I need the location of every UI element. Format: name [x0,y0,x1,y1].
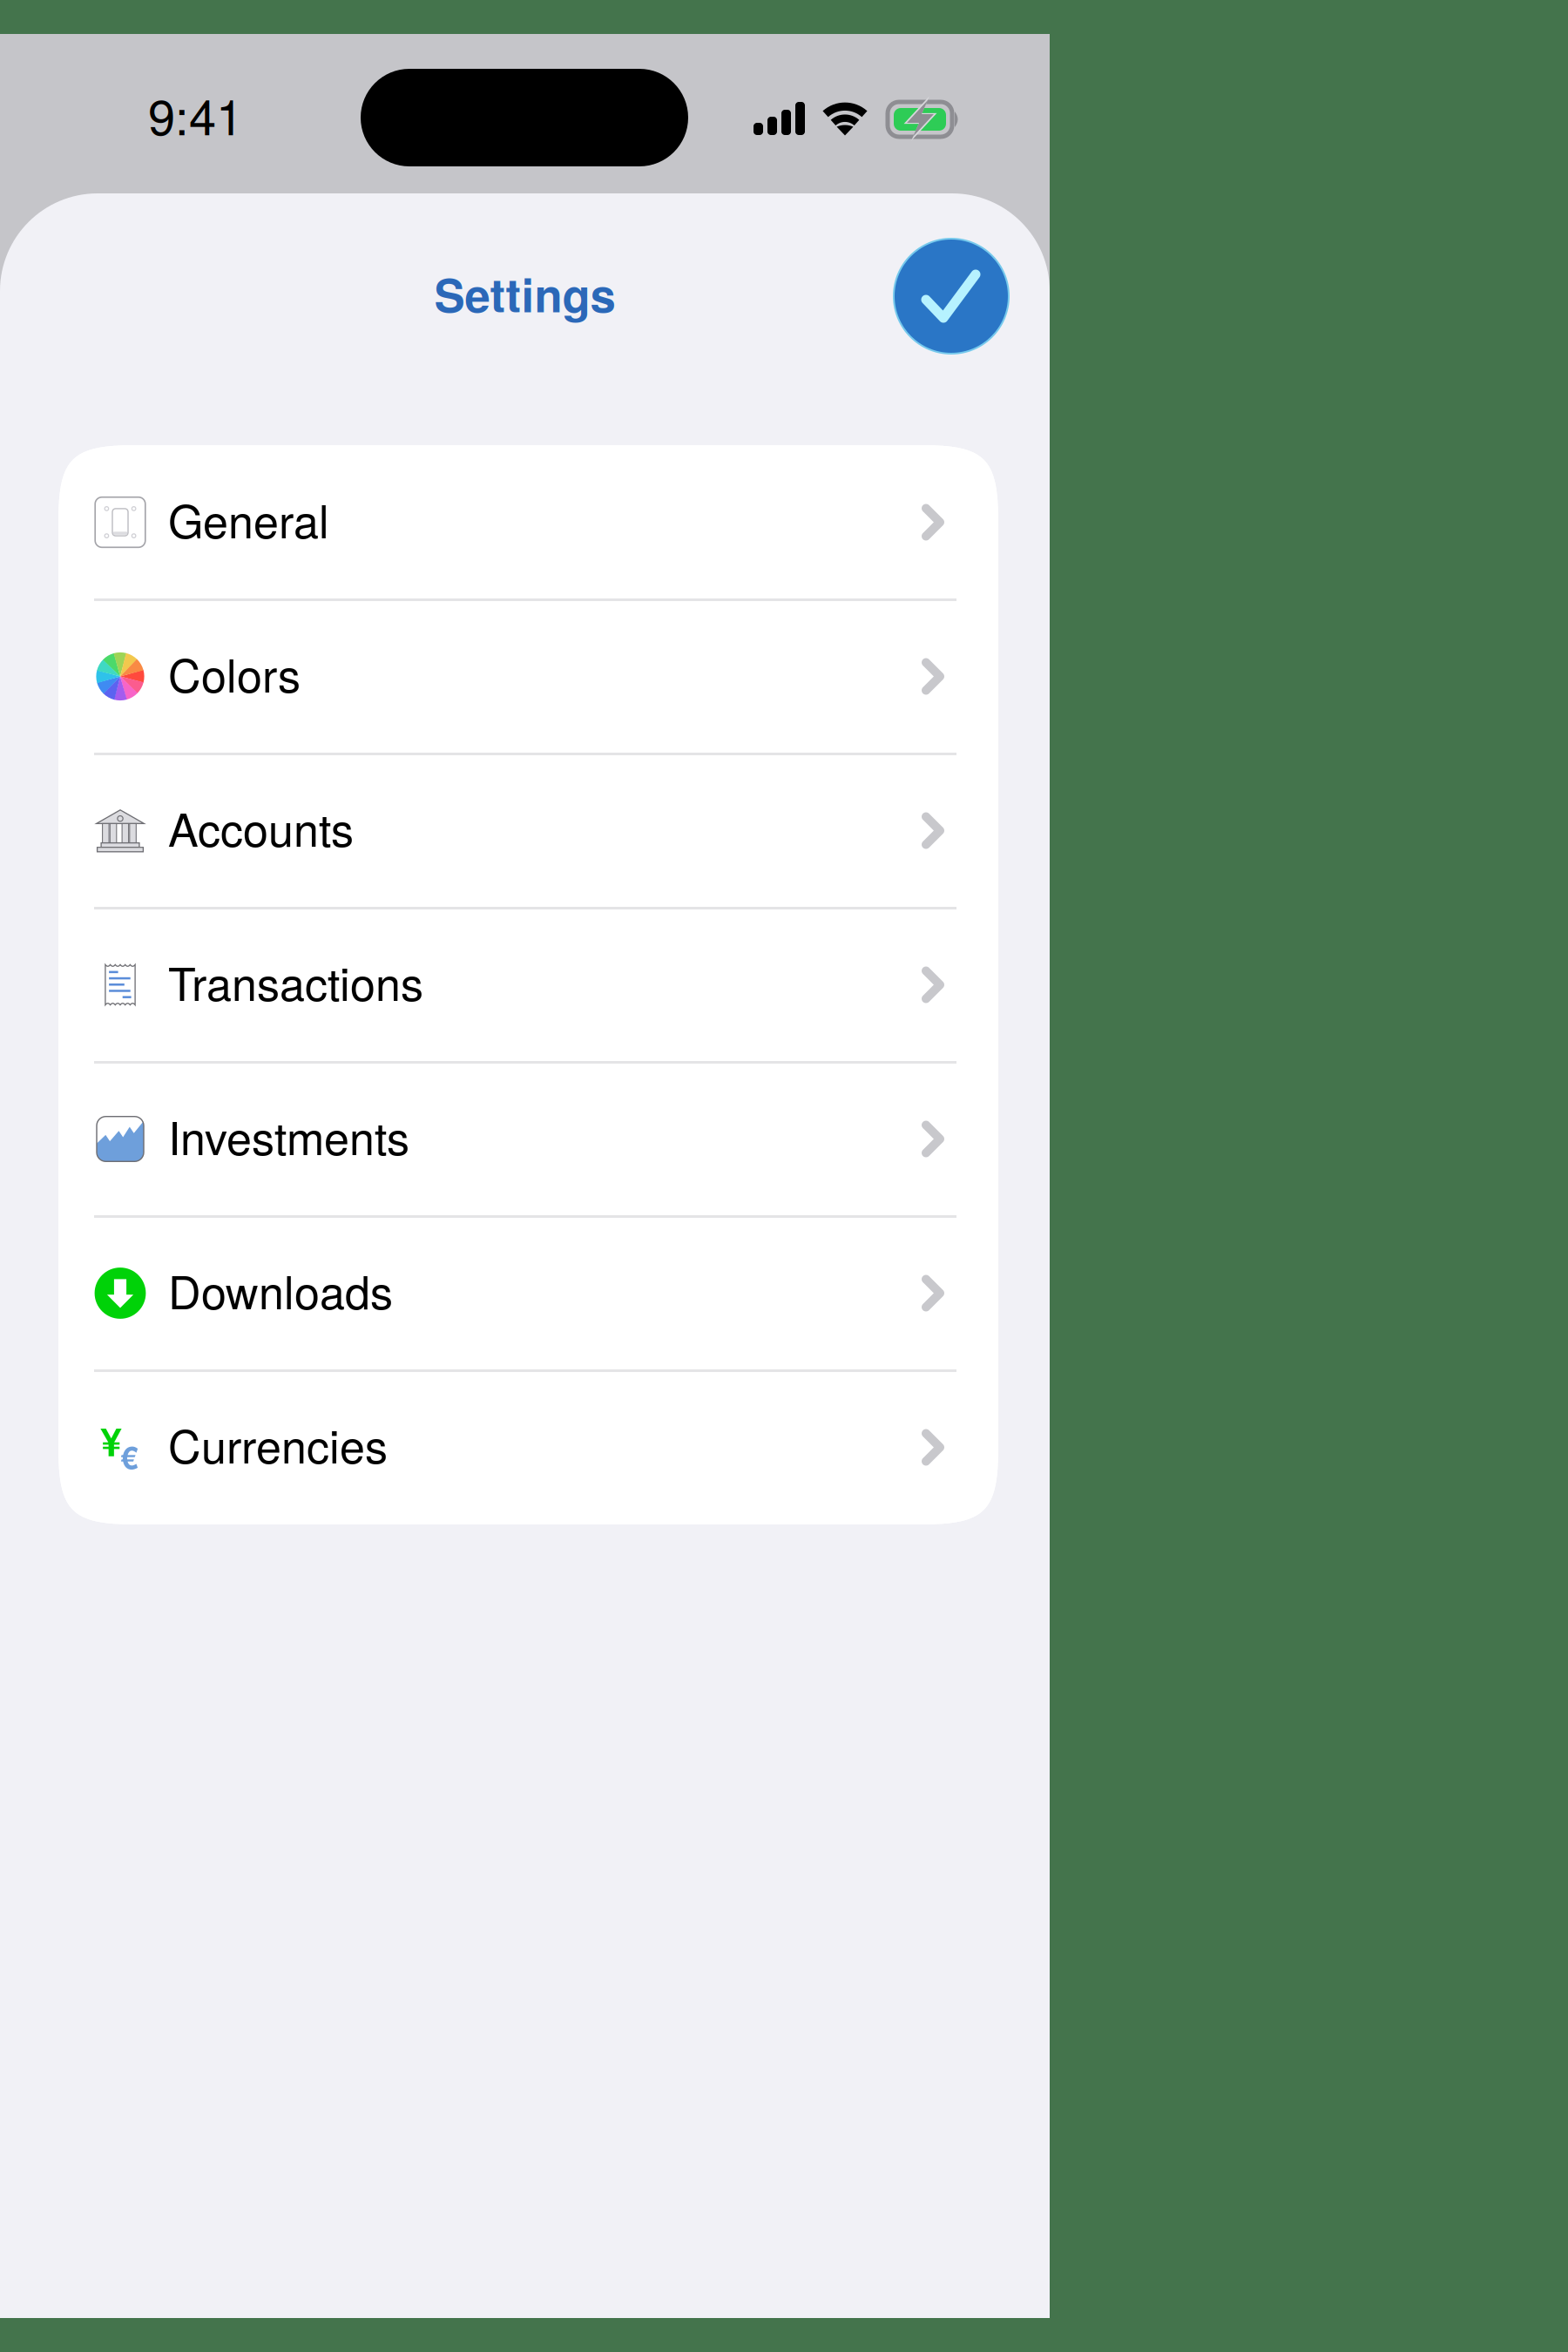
button[interactable]: Investments [58,1062,998,1216]
button[interactable]: Downloads [58,1216,998,1370]
staticText: General [168,486,329,551]
staticText: Settings [434,261,615,326]
button[interactable]: ¥ [58,1370,998,1524]
staticText: ¥ [100,1412,122,1468]
button[interactable]: Accounts [58,754,998,908]
button[interactable]: Colors [58,599,998,754]
staticText: Transactions [168,949,423,1014]
staticText: Accounts [168,795,354,860]
staticText: 9:41 [148,79,243,149]
button[interactable]: Done [893,238,1010,355]
staticText: Currencies [168,1411,388,1476]
staticText: Investments [168,1103,409,1168]
staticText: Downloads [168,1257,393,1322]
staticText: Colors [168,641,301,705]
button[interactable]: General [58,445,998,599]
button[interactable]: Transactions [58,908,998,1062]
staticText: € [121,1434,138,1479]
